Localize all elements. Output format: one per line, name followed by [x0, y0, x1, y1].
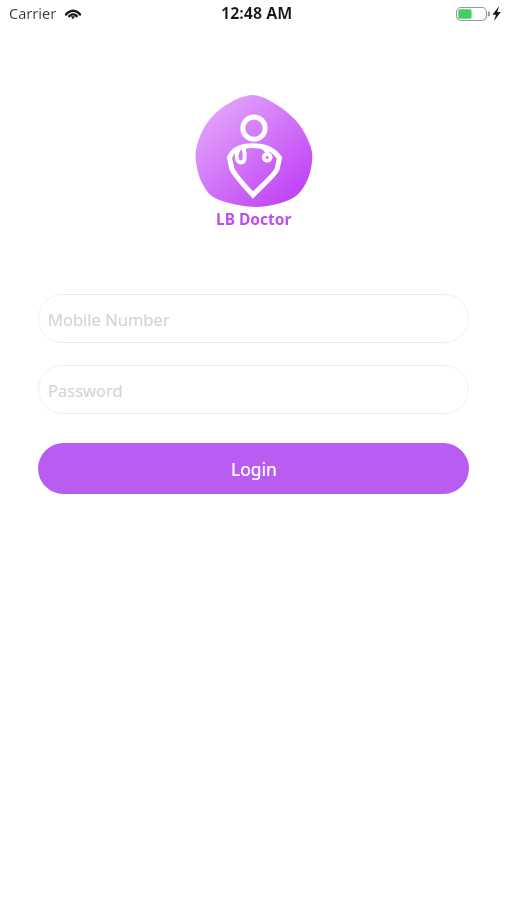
button[interactable]: Password	[38, 365, 469, 414]
staticText: Password	[48, 379, 123, 401]
button[interactable]: Mobile Number	[38, 294, 469, 343]
staticText: Carrier	[9, 3, 57, 23]
staticText: Mobile Number	[48, 308, 170, 330]
staticText: LB Doctor	[216, 208, 292, 229]
button[interactable]: Login	[38, 443, 469, 494]
staticText: Login	[231, 457, 277, 481]
staticText: 12:48 AM	[221, 2, 293, 24]
